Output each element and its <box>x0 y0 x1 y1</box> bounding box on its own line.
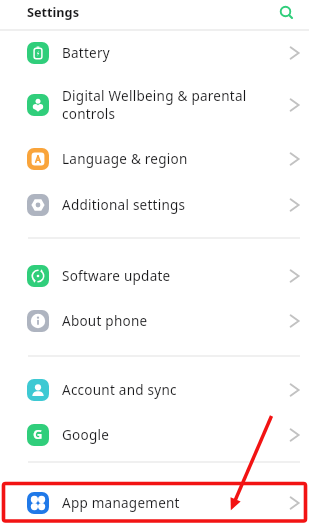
button[interactable]: Google <box>0 412 309 457</box>
button[interactable] <box>279 5 295 21</box>
staticText: Settings <box>27 3 80 20</box>
staticText: Language & region <box>62 150 289 168</box>
button[interactable]: Language & region <box>0 136 309 182</box>
staticText: Account and sync <box>62 381 289 399</box>
staticText: Digital Wellbeing & parental controls <box>62 87 289 123</box>
button[interactable]: App management <box>0 481 309 524</box>
staticText: App management <box>62 494 289 512</box>
button[interactable]: Additional settings <box>0 182 309 228</box>
staticText: Google <box>62 426 289 444</box>
button[interactable]: Account and sync <box>0 367 309 412</box>
button[interactable]: Digital Wellbeing & parental controls <box>0 74 309 136</box>
button[interactable]: Battery <box>0 31 309 74</box>
staticText: Software update <box>62 267 289 285</box>
staticText: Battery <box>62 44 289 62</box>
button[interactable]: About phone <box>0 298 309 343</box>
staticText: Additional settings <box>62 196 289 214</box>
staticText: About phone <box>62 312 289 330</box>
button[interactable]: Software update <box>0 253 309 298</box>
staticText: G <box>33 425 43 443</box>
